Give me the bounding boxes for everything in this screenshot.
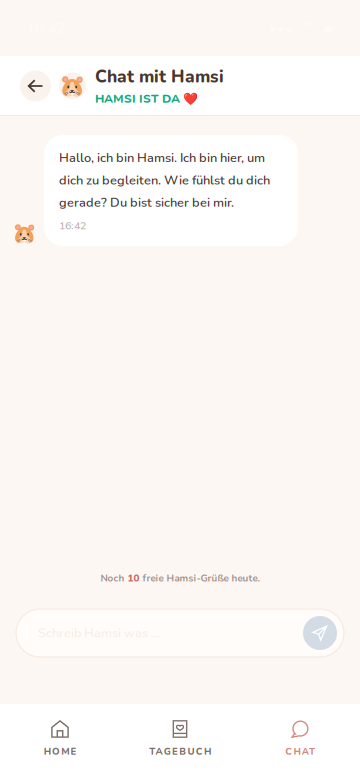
staticText: 🐹 <box>11 221 36 244</box>
button[interactable]: HOME <box>0 720 120 758</box>
button[interactable]: TAGEBUCH <box>120 720 240 758</box>
staticText: ❤️ <box>183 92 198 106</box>
button[interactable]: Send <box>303 616 337 650</box>
staticText: Chat mit Hamsi <box>95 65 224 89</box>
staticText: 10 <box>127 571 139 585</box>
staticText: 🐹 <box>59 74 86 98</box>
staticText: Hallo, ich bin Hamsi. Ich bin hier, um d… <box>59 149 270 211</box>
staticText: freie Hamsi-Grüße heute. <box>139 571 259 585</box>
staticText: CHAT <box>285 745 315 758</box>
staticText: Schreib Hamsi was ... <box>38 624 160 642</box>
staticText: TAGEBUCH <box>149 745 211 758</box>
button[interactable]: Back <box>20 70 51 101</box>
staticText: HOME <box>44 745 76 758</box>
staticText: HAMSI IST DA <box>95 91 180 107</box>
staticText: Noch <box>100 571 127 585</box>
staticText: 16:42 <box>59 218 86 233</box>
button[interactable]: CHAT <box>240 720 360 758</box>
